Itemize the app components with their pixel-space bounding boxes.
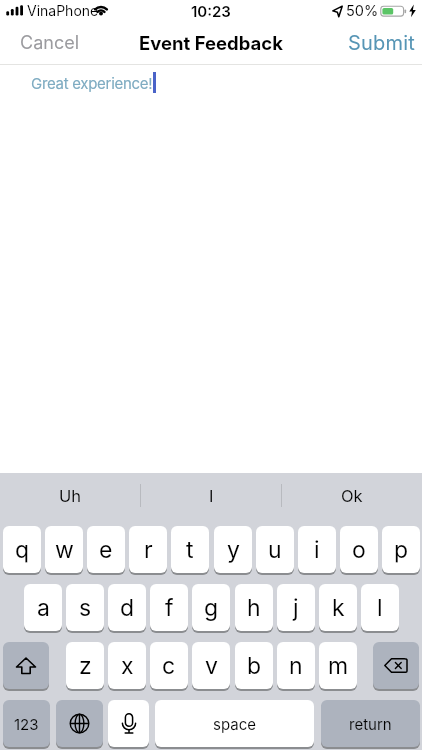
staticText: l [377,594,383,622]
button[interactable]: k [319,584,357,631]
button[interactable] [108,700,149,747]
button[interactable] [3,642,49,689]
staticText: g [204,594,219,622]
button[interactable]: l [361,584,399,631]
button[interactable]: x [108,642,146,689]
button[interactable]: f [150,584,188,631]
staticText: a [37,594,50,622]
staticText: w [55,536,74,564]
staticText: return [349,715,392,733]
button[interactable]: n [277,642,315,689]
staticText: u [268,536,282,564]
staticText: x [121,652,134,680]
staticText: v [205,652,218,680]
button[interactable]: p [382,526,420,573]
staticText: Uh [59,486,82,506]
button[interactable] [56,700,103,747]
staticText: h [247,594,261,622]
staticText: k [332,594,345,622]
staticText: o [352,536,366,564]
button[interactable]: o [340,526,378,573]
staticText: z [79,652,92,680]
button[interactable]: w [45,526,83,573]
button[interactable] [373,642,419,689]
button[interactable]: v [192,642,230,689]
button[interactable]: u [256,526,294,573]
button[interactable]: g [192,584,230,631]
button[interactable]: q [3,526,41,573]
staticText: space [213,715,256,733]
staticText: y [227,536,240,564]
button[interactable]: s [66,584,104,631]
staticText: s [79,594,92,622]
staticText: Ok [341,486,363,506]
staticText: e [99,536,113,564]
button[interactable]: h [235,584,273,631]
button[interactable]: Uh [0,473,140,518]
staticText: j [293,594,299,622]
button[interactable]: Submit [348,31,416,55]
staticText: f [165,594,174,622]
staticText: c [162,652,176,680]
staticText: q [15,536,30,564]
staticText: b [247,652,262,680]
staticText: p [394,536,409,564]
staticText: Submit [348,31,416,55]
staticText: I [209,486,214,506]
staticText: 10:23 [191,2,231,20]
button[interactable]: m [319,642,357,689]
button[interactable]: i [298,526,336,573]
button[interactable]: t [171,526,209,573]
staticText: 123 [14,715,39,733]
staticText: n [289,652,303,680]
button[interactable]: 123 [3,700,50,747]
staticText: Event Feedback [139,32,283,54]
button[interactable]: c [150,642,188,689]
button[interactable]: j [277,584,315,631]
button[interactable]: Ok [282,473,422,518]
staticText: Cancel [20,32,80,54]
button[interactable]: b [235,642,273,689]
button[interactable]: I [141,473,281,518]
staticText: 50% [346,2,379,20]
button[interactable]: Cancel [20,32,80,54]
button[interactable]: y [214,526,252,573]
button[interactable]: e [87,526,125,573]
staticText: i [314,536,320,564]
staticText: d [120,594,135,622]
button[interactable]: return [321,700,420,747]
staticText: r [144,536,153,564]
button[interactable]: a [24,584,62,631]
button[interactable]: space [155,700,314,747]
button[interactable]: Great experience! [31,72,156,93]
button[interactable]: d [108,584,146,631]
button[interactable]: z [66,642,104,689]
staticText: Great experience! [31,74,153,92]
staticText: VinaPhone [27,2,99,19]
staticText: t [186,536,194,564]
staticText: m [328,652,349,680]
button[interactable]: r [129,526,167,573]
